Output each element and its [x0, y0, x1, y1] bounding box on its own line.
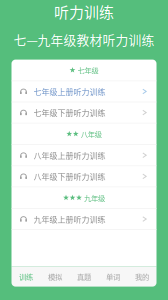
staticText: 七—九年级教材听力训练: [13, 30, 154, 49]
staticText: 九年级: [84, 192, 105, 203]
staticText: 听力训练: [54, 1, 114, 22]
staticText: 七年级上册听力训练: [33, 86, 105, 97]
button[interactable]: 训练: [11, 267, 40, 287]
staticText: 七年级下册听力训练: [33, 107, 105, 118]
staticText: 训练: [19, 271, 33, 282]
staticText: 八年级上册听力训练: [33, 149, 105, 161]
staticText: 单词: [106, 271, 120, 282]
button[interactable]: 八年级下册听力训练: [11, 166, 156, 187]
button[interactable]: 七年级上册听力训练: [11, 81, 156, 102]
button[interactable]: 我的: [127, 267, 156, 287]
staticText: 我的: [135, 271, 149, 282]
staticText: 九年级上册听力训练: [33, 213, 105, 225]
staticText: 七年级: [77, 65, 98, 75]
button[interactable]: 七年级下册听力训练: [11, 102, 156, 123]
button[interactable]: 八年级上册听力训练: [11, 145, 156, 165]
button[interactable]: 单词: [98, 267, 127, 287]
button[interactable]: 真题: [69, 267, 98, 287]
staticText: 模拟: [48, 271, 62, 282]
staticText: 真题: [77, 271, 91, 282]
button[interactable]: 模拟: [40, 267, 69, 287]
button[interactable]: 九年级上册听力训练: [11, 209, 156, 229]
staticText: 八年级下册听力训练: [33, 171, 105, 182]
staticText: 八年级: [81, 129, 102, 139]
